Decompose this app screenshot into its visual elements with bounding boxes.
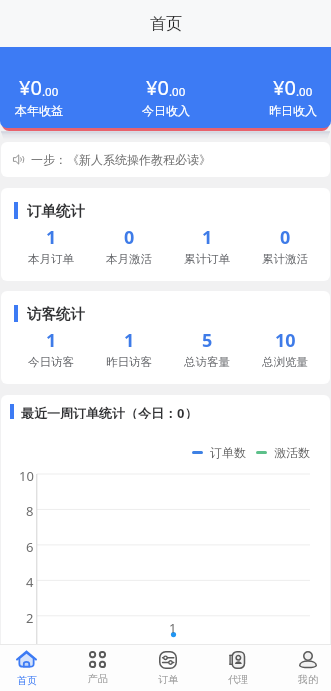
staticText: 订单: [158, 673, 178, 686]
staticText: 总浏览量: [262, 355, 308, 369]
button[interactable]: 1: [12, 225, 90, 266]
staticText: 今日收入: [142, 103, 190, 118]
staticText: 5: [202, 328, 213, 353]
staticText: 1: [124, 328, 135, 353]
staticText: 本月激活: [106, 252, 152, 266]
staticText: .00: [42, 84, 59, 100]
other: 代理: [229, 651, 247, 669]
other: 我的: [299, 651, 317, 669]
staticText: 本月订单: [28, 252, 74, 266]
staticText: 首页: [150, 14, 182, 34]
staticText: 6: [26, 538, 34, 552]
staticText: ¥0: [273, 74, 296, 101]
button[interactable]: 1: [12, 328, 90, 369]
staticText: 累计订单: [184, 252, 230, 266]
staticText: 10: [19, 467, 34, 481]
staticText: 昨日收入: [269, 103, 317, 118]
button[interactable]: 首页: [0, 645, 62, 691]
staticText: 代理: [228, 673, 248, 686]
staticText: 1: [46, 225, 57, 250]
other: 首页: [16, 649, 37, 670]
button[interactable]: 5: [168, 328, 246, 369]
button[interactable]: 0: [246, 225, 324, 266]
other: 订单: [159, 651, 177, 669]
staticText: 本年收益: [15, 103, 63, 118]
staticText: 访客统计: [27, 305, 85, 322]
staticText: .00: [169, 84, 186, 100]
staticText: 我的: [298, 673, 318, 686]
staticText: 最近一周订单统计（今日：0）: [21, 404, 198, 419]
staticText: 1: [202, 225, 213, 250]
staticText: 一步：《新人系统操作教程必读》: [31, 152, 211, 167]
staticText: .00: [296, 84, 313, 100]
staticText: 累计激活: [262, 252, 308, 266]
staticText: 订单统计: [27, 202, 85, 219]
staticText: 1: [46, 328, 57, 353]
staticText: 首页: [17, 674, 37, 687]
staticText: 2: [26, 609, 34, 623]
staticText: 今日访客: [28, 355, 74, 369]
button[interactable]: 代理: [203, 645, 273, 691]
button[interactable]: 一步：《新人系统操作教程必读》: [1, 142, 330, 177]
staticText: 总访客量: [184, 355, 230, 369]
button[interactable]: 1: [168, 225, 246, 266]
staticText: 昨日访客: [106, 355, 152, 369]
staticText: 0: [124, 225, 135, 250]
button[interactable]: 我的: [273, 645, 331, 691]
staticText: 4: [26, 573, 34, 587]
staticText: 订单数: [210, 445, 246, 460]
button[interactable]: 订单: [133, 645, 203, 691]
staticText: 激活数: [274, 445, 310, 460]
staticText: 8: [26, 502, 34, 516]
staticText: 10: [275, 328, 296, 353]
staticText: 产品: [88, 672, 108, 685]
button[interactable]: 产品: [62, 645, 133, 691]
button[interactable]: 1: [90, 328, 168, 369]
staticText: 0: [280, 225, 291, 250]
button[interactable]: 0: [90, 225, 168, 266]
staticText: ¥0: [19, 74, 42, 101]
button[interactable]: 10: [246, 328, 324, 369]
other: 产品: [89, 651, 106, 668]
staticText: 1: [169, 619, 177, 637]
staticText: ¥0: [146, 74, 169, 101]
